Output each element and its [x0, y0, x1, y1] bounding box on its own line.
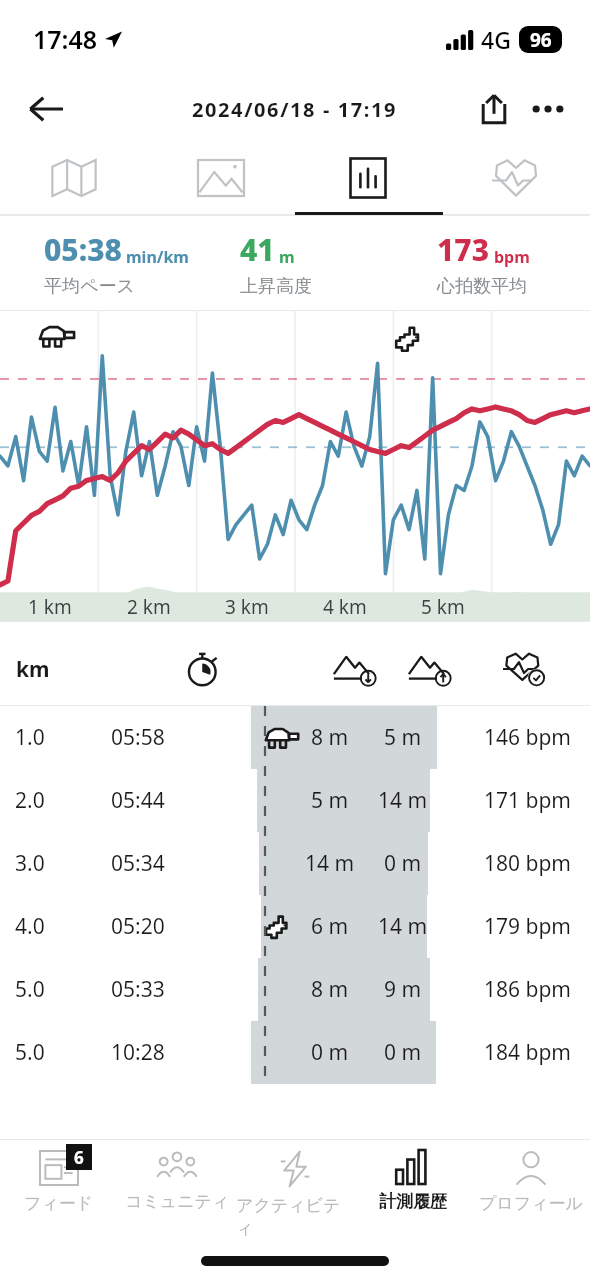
staticText: 5 m — [384, 723, 422, 752]
staticText: 179 bpm — [484, 912, 571, 941]
staticText: 186 bpm — [484, 975, 571, 1004]
staticText: 41 — [240, 229, 275, 270]
button[interactable]: 6 — [0, 1140, 118, 1242]
button[interactable]: 1.0 — [0, 706, 590, 769]
staticText: プロフィール — [479, 1193, 583, 1214]
staticText: m — [279, 246, 295, 268]
staticText: 平均ペース — [44, 275, 135, 298]
button[interactable]: アクティビティ — [236, 1140, 354, 1242]
button[interactable]: 2.0 — [0, 769, 590, 832]
staticText: 8 m — [311, 975, 349, 1004]
staticText: min/km — [126, 246, 189, 268]
staticText: 3 km — [225, 594, 269, 620]
staticText: 14 m — [305, 849, 355, 878]
button[interactable]: 5.0 — [0, 958, 590, 1021]
staticText: 5.0 — [15, 975, 45, 1004]
staticText: bpm — [494, 246, 530, 268]
staticText: 0 m — [384, 849, 422, 878]
staticText: 心拍数平均 — [437, 275, 527, 298]
staticText: 9 m — [384, 975, 422, 1004]
staticText: km — [16, 655, 50, 684]
staticText: 5.0 — [15, 1038, 45, 1067]
staticText: アクティビティ — [236, 1195, 354, 1239]
staticText: 0 m — [311, 1038, 349, 1067]
staticText: 14 m — [378, 912, 428, 941]
staticText: 2024/06/18 - 17:19 — [192, 96, 398, 123]
staticText: 17:48 — [33, 22, 98, 56]
staticText: フィード — [24, 1193, 94, 1214]
staticText: 3.0 — [15, 849, 45, 878]
button[interactable]: 計測履歴 — [354, 1140, 472, 1242]
button[interactable]: Tab — [147, 140, 294, 215]
staticText: 05:34 — [111, 849, 165, 878]
staticText: 14 m — [378, 786, 428, 815]
staticText: 上昇高度 — [240, 275, 312, 298]
button[interactable]: Back — [18, 81, 74, 137]
staticText: 4G — [481, 24, 511, 55]
button[interactable]: Charts tab selected — [294, 140, 442, 215]
staticText: 173 — [437, 229, 490, 270]
button[interactable]: プロフィール — [472, 1140, 590, 1242]
staticText: 1 km — [28, 594, 72, 620]
staticText: 4 km — [323, 594, 367, 620]
button[interactable]: コミュニティ — [118, 1140, 236, 1242]
staticText: 計測履歴 — [379, 1191, 447, 1212]
staticText: 05:38 — [44, 229, 122, 270]
staticText: 2 km — [127, 594, 171, 620]
staticText: 96 — [530, 27, 552, 53]
staticText: 4.0 — [15, 912, 45, 941]
button[interactable]: Tab — [442, 140, 590, 215]
staticText: 171 bpm — [484, 786, 571, 815]
staticText: 184 bpm — [484, 1038, 571, 1067]
staticText: コミュニティ — [125, 1191, 230, 1212]
button[interactable]: More options — [520, 81, 576, 137]
staticText: 146 bpm — [484, 723, 571, 752]
staticText: 5 m — [311, 786, 349, 815]
button[interactable]: 5.0 — [0, 1021, 590, 1084]
staticText: 05:58 — [111, 723, 165, 752]
staticText: 6 m — [311, 912, 349, 941]
staticText: 2.0 — [15, 786, 45, 815]
staticText: 05:33 — [111, 975, 165, 1004]
button[interactable]: 3.0 — [0, 832, 590, 895]
staticText: 5 km — [421, 594, 465, 620]
staticText: 8 m — [311, 723, 349, 752]
staticText: 0 m — [384, 1038, 422, 1067]
staticText: 10:28 — [111, 1038, 165, 1067]
staticText: 6 — [74, 1146, 84, 1169]
staticText: 05:20 — [111, 912, 165, 941]
button[interactable]: 4.0 — [0, 895, 590, 958]
staticText: 1.0 — [15, 723, 45, 752]
staticText: 180 bpm — [484, 849, 571, 878]
button[interactable]: Tab — [0, 140, 147, 215]
button[interactable]: Share — [468, 83, 520, 135]
staticText: 05:44 — [111, 786, 165, 815]
